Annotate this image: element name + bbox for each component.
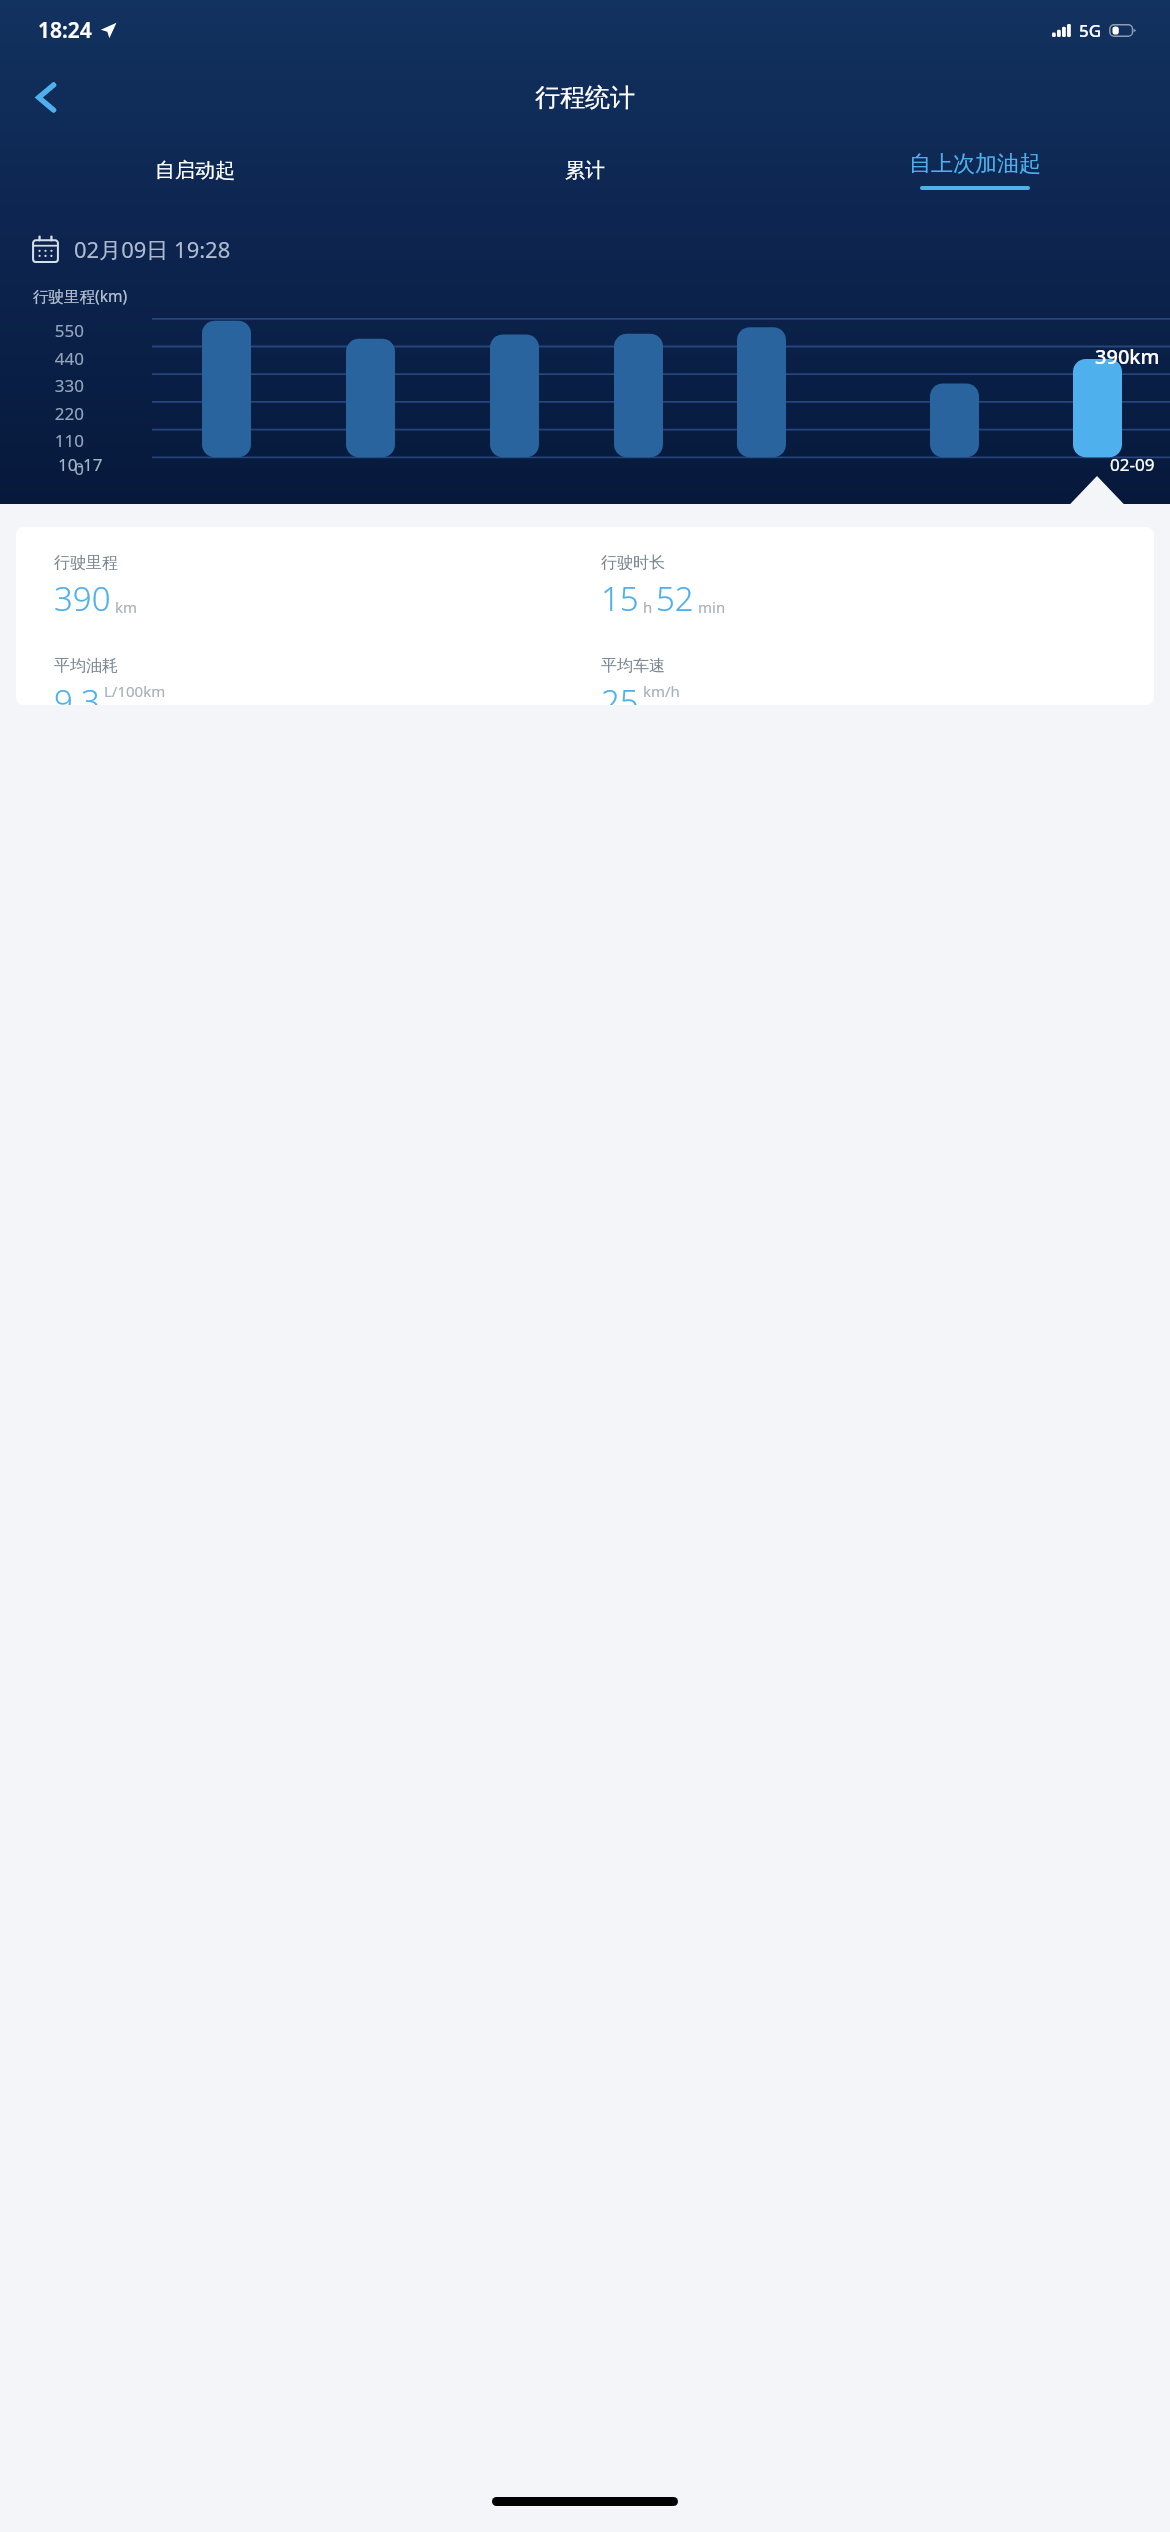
- staticText: 02月09日 19:28: [74, 234, 231, 264]
- staticText: 52: [656, 576, 694, 621]
- button[interactable]: 行驶里程: [16, 527, 1154, 705]
- staticText: 行程统计: [535, 82, 635, 113]
- staticText: 平均油耗: [54, 656, 118, 676]
- staticText: 02-09: [1110, 453, 1155, 476]
- button[interactable]: 自上次加油起: [780, 134, 1170, 206]
- staticText: h: [643, 597, 653, 617]
- staticText: min: [698, 597, 726, 617]
- staticText: 220: [26, 402, 84, 425]
- staticText: 0: [26, 457, 84, 480]
- staticText: 自上次加油起: [909, 150, 1041, 178]
- staticText: km: [115, 597, 138, 617]
- staticText: 18:24: [38, 16, 92, 45]
- staticText: km/h: [643, 681, 680, 701]
- staticText: L/100km: [104, 681, 166, 701]
- staticText: 330: [26, 374, 84, 397]
- button[interactable]: 自启动起: [0, 134, 390, 206]
- staticText: 15: [601, 576, 639, 621]
- staticText: 累计: [565, 158, 605, 183]
- staticText: 390km: [1095, 343, 1160, 370]
- button[interactable]: 累计: [390, 134, 780, 206]
- staticText: 390: [54, 576, 111, 621]
- staticText: 550: [26, 319, 84, 342]
- staticText: 9.3: [54, 679, 100, 705]
- button[interactable]: Back: [16, 67, 76, 127]
- staticText: 行驶里程(km): [33, 285, 128, 306]
- staticText: 25: [601, 679, 639, 705]
- staticText: 440: [26, 347, 84, 370]
- staticText: 行驶里程: [54, 553, 118, 573]
- staticText: 行驶时长: [601, 553, 665, 573]
- staticText: 自启动起: [155, 158, 235, 183]
- staticText: 110: [26, 429, 84, 452]
- staticText: 5G: [1079, 19, 1102, 42]
- staticText: 10-17: [58, 453, 103, 476]
- staticText: 平均车速: [601, 656, 665, 676]
